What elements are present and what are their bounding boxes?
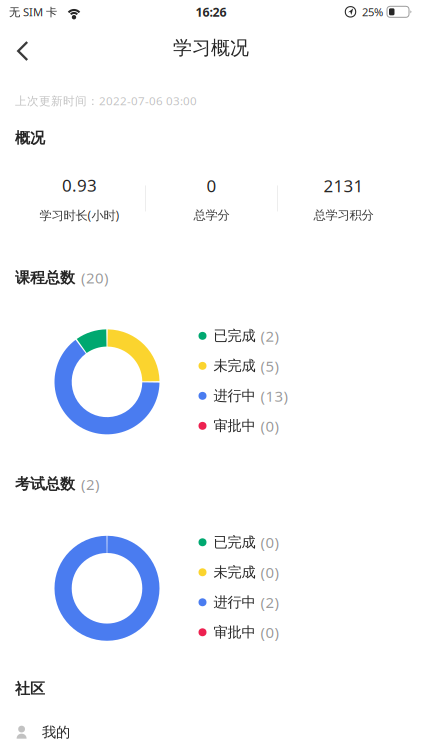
staticText: 总学分 — [193, 207, 229, 223]
staticText: 2131 — [323, 174, 363, 197]
staticText: (5) — [260, 356, 279, 376]
staticText: (20) — [81, 267, 109, 288]
staticText: 0.93 — [62, 173, 97, 197]
button[interactable]: 我的 — [0, 710, 422, 750]
staticText: 社区 — [15, 679, 45, 698]
staticText: 总学习积分 — [313, 207, 373, 223]
staticText: 16:26 — [195, 3, 226, 20]
staticText: 进行中 — [213, 387, 255, 405]
staticText: 25% — [362, 4, 383, 19]
staticText: 学习时长(小时) — [39, 207, 119, 223]
staticText: 考试总数 — [15, 475, 75, 493]
staticText: 概况 — [15, 129, 45, 147]
staticText: (0) — [260, 622, 279, 642]
staticText: 审批中 — [213, 417, 255, 435]
staticText: 0 — [206, 174, 216, 197]
staticText: 进行中 — [213, 593, 255, 611]
staticText: 已完成 — [213, 327, 255, 345]
staticText: (0) — [260, 416, 279, 436]
staticText: (2) — [260, 326, 279, 346]
staticText: 我的 — [42, 723, 70, 741]
staticText: 上次更新时间：2022-07-06 03:00 — [15, 93, 197, 109]
staticText: (2) — [260, 592, 279, 612]
button[interactable]: 返回 — [0, 26, 42, 70]
staticText: 未完成 — [213, 357, 255, 375]
staticText: 无 SIM 卡 — [9, 4, 57, 19]
staticText: (0) — [260, 562, 279, 582]
staticText: (0) — [260, 532, 279, 552]
staticText: (2) — [81, 474, 100, 494]
staticText: 未完成 — [213, 563, 255, 581]
staticText: 课程总数 — [15, 268, 75, 287]
staticText: (13) — [260, 386, 288, 406]
staticText: 学习概况 — [173, 36, 249, 60]
staticText: 已完成 — [213, 533, 255, 551]
staticText: 审批中 — [213, 623, 255, 641]
